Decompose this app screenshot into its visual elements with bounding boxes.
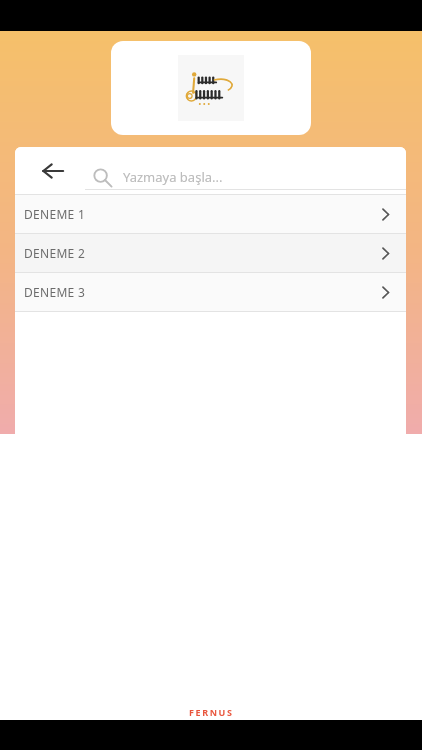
staticText: Yazmaya başla... (123, 168, 223, 186)
staticText: DENEME 1 (24, 206, 86, 222)
button[interactable]: DENEME 2 (15, 234, 406, 272)
button[interactable] (111, 41, 311, 135)
button[interactable]: DENEME 3 (15, 273, 406, 311)
staticText: FERNUS (189, 706, 234, 718)
staticText: DENEME 3 (24, 284, 86, 300)
button[interactable]: DENEME 1 (15, 195, 406, 233)
staticText: DENEME 2 (24, 245, 86, 261)
button[interactable]: Yazmaya başla... (77, 147, 406, 194)
button[interactable]: Back (27, 147, 79, 194)
